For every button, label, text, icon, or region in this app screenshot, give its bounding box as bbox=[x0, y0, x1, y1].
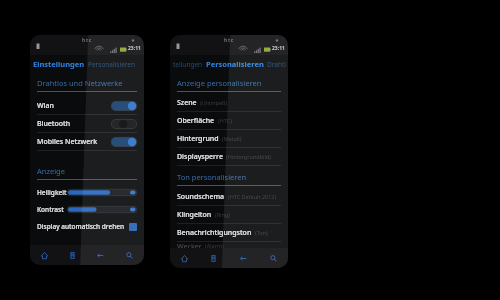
staticText: (HTC) bbox=[218, 117, 232, 124]
staticText: Soundschema bbox=[177, 192, 225, 202]
staticText: htc bbox=[224, 37, 235, 44]
button[interactable]: Mobiles Netzwerk bbox=[30, 133, 144, 150]
button[interactable]: Helligkeit bbox=[30, 184, 144, 201]
button[interactable]: Klingelton bbox=[170, 206, 288, 223]
staticText: Mobiles Netzwerk bbox=[37, 137, 111, 147]
staticText: Drahtlo bbox=[267, 60, 288, 69]
button[interactable]: Oberfläche bbox=[170, 112, 288, 129]
staticText: Szene bbox=[177, 98, 197, 108]
staticText: Personalisieren Dra bbox=[88, 60, 144, 69]
button[interactable]: Benachrichtigungston bbox=[170, 224, 288, 241]
staticText: Personalisieren bbox=[206, 59, 264, 69]
button[interactable]: Bluetooth bbox=[30, 115, 144, 132]
staticText: 23:11 bbox=[272, 45, 285, 52]
button[interactable]: Recent apps bbox=[199, 248, 228, 268]
staticText: Ton personalisieren bbox=[177, 172, 247, 182]
button[interactable]: Back bbox=[228, 248, 258, 268]
button[interactable]: Home bbox=[170, 248, 199, 268]
staticText: Anzeige personalisieren bbox=[177, 78, 262, 88]
button[interactable]: tellungen bbox=[170, 55, 288, 72]
staticText: Hintergrund bbox=[177, 134, 219, 144]
staticText: Benachrichtigungston bbox=[177, 228, 252, 238]
button[interactable]: Wecker bbox=[170, 242, 288, 248]
staticText: Kontrast bbox=[37, 205, 67, 214]
staticText: (Alarm) bbox=[205, 242, 224, 248]
button[interactable]: Soundschema bbox=[170, 188, 288, 205]
button[interactable]: Search bbox=[115, 245, 144, 265]
button[interactable]: Kontrast bbox=[30, 201, 144, 218]
staticText: Einstellungen bbox=[33, 59, 85, 69]
staticText: Wecker bbox=[177, 242, 202, 248]
button[interactable]: Displaysperre bbox=[170, 148, 288, 165]
staticText: Display automatisch drehen bbox=[37, 222, 129, 231]
staticText: 23:11 bbox=[128, 45, 141, 52]
staticText: (Metall) bbox=[222, 135, 242, 142]
staticText: Displaysperre bbox=[177, 152, 223, 162]
staticText: (Unimpeß) bbox=[200, 99, 228, 106]
staticText: Helligkeit bbox=[37, 188, 67, 197]
button[interactable]: Hintergrund bbox=[170, 130, 288, 147]
staticText: Bluetooth bbox=[37, 119, 111, 129]
button[interactable]: Wlan bbox=[30, 97, 144, 114]
button[interactable]: Einstellungen bbox=[30, 55, 144, 72]
staticText: Oberfläche bbox=[177, 116, 215, 126]
button[interactable]: Back bbox=[86, 245, 115, 265]
button[interactable]: Recent apps bbox=[58, 245, 86, 265]
staticText: (HTC Default 2012) bbox=[228, 193, 277, 200]
button[interactable]: Home bbox=[30, 245, 58, 265]
button[interactable]: Search bbox=[258, 248, 288, 268]
staticText: (Ring) bbox=[215, 211, 230, 218]
staticText: (Ton) bbox=[255, 229, 268, 236]
staticText: tellungen bbox=[173, 60, 203, 69]
staticText: (Hintergrundbild) bbox=[226, 153, 271, 160]
button[interactable]: Display automatisch drehen bbox=[30, 218, 144, 235]
staticText: Drahtlos und Netzwerke bbox=[37, 78, 123, 88]
staticText: Klingelton bbox=[177, 210, 212, 220]
staticText: Anzeige bbox=[37, 166, 65, 176]
staticText: htc bbox=[82, 37, 93, 44]
staticText: Wlan bbox=[37, 101, 111, 111]
button[interactable]: Szene bbox=[170, 94, 288, 111]
